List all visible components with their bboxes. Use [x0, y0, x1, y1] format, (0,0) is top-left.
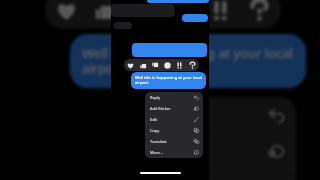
button[interactable]: Add Sticker	[145, 103, 203, 114]
button[interactable]: Well this is happening at your local air…	[70, 34, 306, 88]
button[interactable]: Like	[138, 60, 149, 71]
button[interactable]: Well this is happening at your local air…	[131, 72, 206, 89]
button[interactable]: Reply	[113, 97, 296, 132]
button[interactable]: Emphasize	[174, 60, 185, 71]
button[interactable]: Laugh	[166, 0, 199, 27]
button[interactable]: Translate	[145, 136, 203, 147]
staticText: More...	[150, 150, 163, 155]
button[interactable]: Love	[50, 0, 83, 27]
button[interactable]: Question	[243, 0, 276, 27]
button[interactable]: Emphasize	[204, 0, 237, 27]
staticText: Reply	[150, 95, 160, 100]
staticText: Add Sticker	[150, 106, 171, 111]
staticText: Well this is happening at your local air…	[135, 75, 202, 85]
staticText: Add Sticker	[127, 142, 192, 159]
button[interactable]: Like	[89, 0, 122, 27]
button[interactable]: Love	[125, 60, 136, 71]
button[interactable]: Edit	[145, 114, 203, 125]
staticText: Well this is happening at your local air…	[82, 44, 293, 77]
staticText: Translate	[150, 139, 167, 144]
button[interactable]: Add Sticker	[113, 133, 296, 168]
staticText: Copy	[150, 128, 160, 133]
button[interactable]: Laugh	[162, 60, 173, 71]
button[interactable]: Dislike	[127, 0, 160, 27]
staticText: Reply	[127, 106, 159, 123]
button[interactable]: More...	[145, 147, 203, 158]
button[interactable]: Edit	[113, 169, 296, 180]
staticText: Edit	[150, 117, 157, 122]
button[interactable]: Dislike	[150, 60, 161, 71]
button[interactable]: Copy	[145, 125, 203, 136]
button[interactable]: Question	[187, 60, 198, 71]
button[interactable]: Reply	[145, 92, 203, 103]
